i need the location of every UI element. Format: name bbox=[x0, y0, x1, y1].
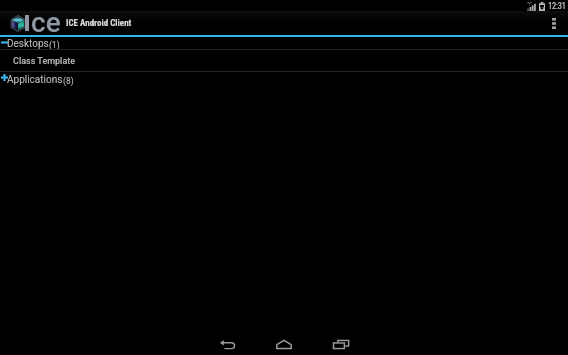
button[interactable]: Class Template bbox=[0, 50, 568, 71]
staticText: (1) bbox=[49, 40, 60, 50]
button[interactable]: Recent apps bbox=[315, 327, 367, 355]
staticText: Desktops bbox=[7, 38, 49, 50]
button[interactable]: Applications bbox=[0, 72, 568, 87]
button[interactable]: More options bbox=[542, 12, 564, 35]
staticText: 12:31 bbox=[548, 1, 566, 11]
button[interactable]: Home bbox=[258, 327, 310, 355]
button[interactable]: Desktops bbox=[0, 37, 568, 49]
staticText: Class Template bbox=[13, 56, 76, 67]
staticText: Applications bbox=[7, 74, 63, 86]
staticText: ICE Android Client bbox=[66, 18, 132, 29]
staticText: ce bbox=[31, 6, 62, 39]
button[interactable]: Back bbox=[201, 327, 253, 355]
staticText: (8) bbox=[63, 76, 74, 86]
